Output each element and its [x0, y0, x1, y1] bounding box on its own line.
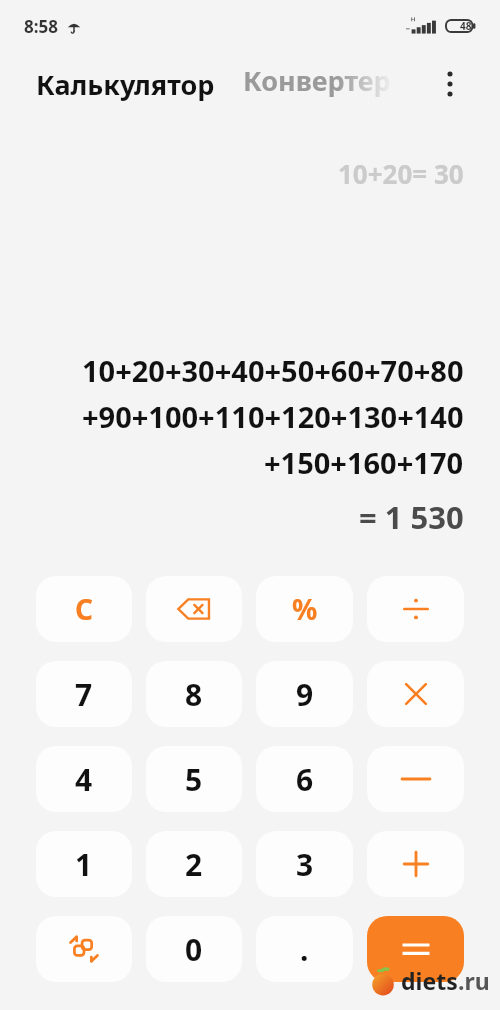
- button[interactable]: Калькулятор: [36, 66, 215, 103]
- button[interactable]: 9: [256, 661, 353, 727]
- staticText: 6: [296, 759, 314, 800]
- button[interactable]: 4: [36, 746, 132, 812]
- staticText: 0: [185, 929, 203, 970]
- staticText: 4: [75, 759, 93, 800]
- button[interactable]: Multiply: [367, 661, 464, 727]
- staticText: +90+100+110+120+130+140: [82, 397, 464, 436]
- button[interactable]: More options: [430, 64, 470, 104]
- staticText: 3: [296, 844, 314, 885]
- staticText: 48: [460, 19, 472, 33]
- staticText: .ru: [458, 965, 490, 996]
- staticText: 5: [185, 759, 203, 800]
- staticText: = 1 530: [359, 496, 464, 538]
- button[interactable]: Percent: [256, 576, 353, 642]
- button[interactable]: Equals: [367, 916, 464, 982]
- button[interactable]: 6: [256, 746, 353, 812]
- staticText: 1: [75, 844, 93, 885]
- button[interactable]: 8: [146, 661, 242, 727]
- button[interactable]: 2: [146, 831, 242, 897]
- button[interactable]: 0: [146, 916, 242, 982]
- staticText: 8: [185, 674, 203, 715]
- button[interactable]: 3: [256, 831, 353, 897]
- button[interactable]: 7: [36, 661, 132, 727]
- button[interactable]: Plus: [367, 831, 464, 897]
- button[interactable]: Clear: [36, 576, 132, 642]
- staticText: Калькулятор: [36, 66, 215, 103]
- staticText: .: [300, 929, 309, 970]
- button[interactable]: Backspace: [146, 576, 242, 642]
- staticText: %: [292, 590, 318, 628]
- staticText: 9: [296, 674, 314, 715]
- button[interactable]: Convert: [36, 916, 132, 982]
- staticText: 10+20= 30: [338, 156, 464, 191]
- staticText: 2: [185, 844, 203, 885]
- button[interactable]: Minus: [367, 746, 464, 812]
- staticText: C: [75, 590, 93, 628]
- button[interactable]: Конвертер: [243, 62, 395, 106]
- staticText: diets: [401, 965, 458, 996]
- button[interactable]: Divide: [367, 576, 464, 642]
- button[interactable]: 5: [146, 746, 242, 812]
- button[interactable]: 1: [36, 831, 132, 897]
- button[interactable]: Decimal point: [256, 916, 353, 982]
- staticText: +150+160+170: [264, 443, 464, 482]
- staticText: 10+20+30+40+50+60+70+80: [82, 351, 464, 390]
- staticText: Конвертер: [243, 62, 391, 99]
- staticText: 7: [75, 674, 93, 715]
- staticText: 8:58: [24, 15, 58, 38]
